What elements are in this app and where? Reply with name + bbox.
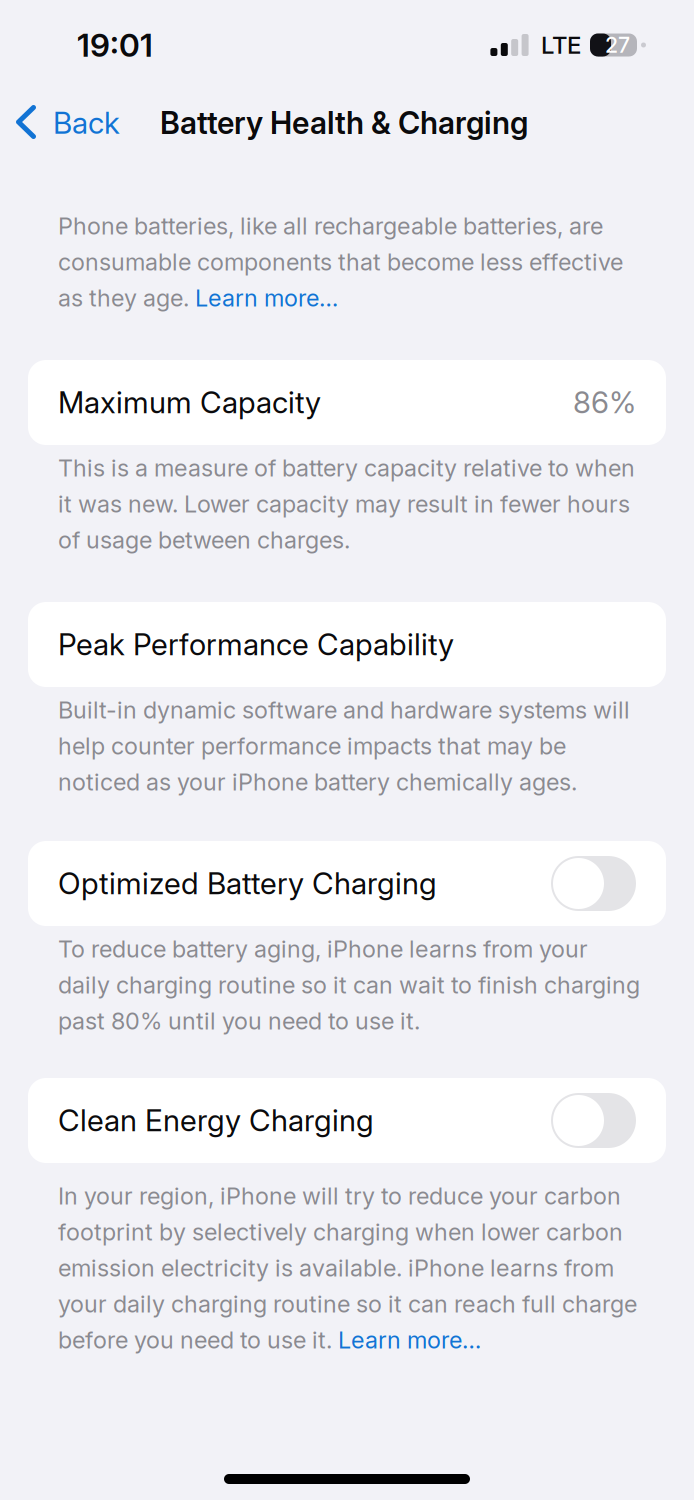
staticText: consumable components that become less e… — [58, 248, 623, 276]
staticText: your daily charging routine so it can re… — [58, 1290, 637, 1318]
button[interactable]: Clean Energy Charging — [0, 1078, 694, 1163]
button[interactable]: Maximum Capacity — [0, 360, 694, 445]
staticText: Learn more… — [338, 1326, 481, 1354]
button[interactable]: Optimized Battery Charging — [0, 841, 694, 926]
staticText: Peak Performance Capability — [58, 626, 454, 662]
staticText: as they age. — [58, 284, 195, 312]
staticText: footprint by selectively charging when l… — [58, 1218, 623, 1246]
staticText: emission electricity is available. iPhon… — [58, 1254, 614, 1282]
staticText: Battery Health & Charging — [160, 105, 528, 141]
staticText: 19:01 — [77, 26, 153, 64]
staticText: To reduce battery aging, iPhone learns f… — [58, 935, 588, 963]
staticText: past 80% until you need to use it. — [58, 1007, 420, 1035]
staticText: LTE — [541, 30, 581, 59]
staticText: 86% — [573, 384, 636, 420]
staticText: Learn more… — [195, 284, 338, 312]
button[interactable]: Learn more… — [338, 1326, 481, 1354]
staticText: Optimized Battery Charging — [58, 865, 437, 901]
staticText: Built-in dynamic software and hardware s… — [58, 696, 630, 724]
staticText: Maximum Capacity — [58, 384, 321, 420]
staticText: In your region, iPhone will try to reduc… — [58, 1182, 621, 1210]
staticText: Clean Energy Charging — [58, 1102, 374, 1138]
staticText: daily charging routine so it can wait to… — [58, 971, 640, 999]
button[interactable]: Peak Performance Capability — [0, 602, 694, 687]
staticText: help counter performance impacts that ma… — [58, 732, 566, 760]
staticText: it was new. Lower capacity may result in… — [58, 490, 630, 518]
staticText: noticed as your iPhone battery chemicall… — [58, 768, 577, 796]
staticText: of usage between charges. — [58, 526, 350, 554]
staticText: Phone batteries, like all rechargeable b… — [58, 212, 603, 240]
staticText: This is a measure of battery capacity re… — [58, 454, 635, 482]
staticText: 27 — [605, 32, 630, 58]
button[interactable]: Back — [0, 95, 134, 151]
button[interactable]: Learn more… — [195, 284, 338, 312]
staticText: before you need to use it. — [58, 1326, 338, 1354]
staticText: Back — [53, 105, 120, 141]
